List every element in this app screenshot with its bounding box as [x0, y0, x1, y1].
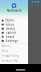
staticText: Saved [5, 35, 14, 39]
staticText: Home [5, 18, 14, 22]
staticText: About [1, 44, 10, 48]
staticText: Terms of Use [1, 59, 18, 63]
button[interactable]: Explore [0, 31, 28, 35]
staticText: Northwind [6, 9, 21, 13]
staticText: Library [5, 27, 14, 30]
button[interactable]: Saved [0, 35, 28, 39]
button[interactable]: Privacy Policy [0, 53, 28, 58]
button[interactable]: About [0, 43, 28, 48]
staticText: Help [1, 49, 8, 53]
button[interactable]: Home [0, 18, 28, 22]
button[interactable]: Help [0, 48, 28, 53]
staticText: Explore [5, 31, 16, 35]
button[interactable]: Library [0, 27, 28, 31]
button[interactable]: Terms of Use [0, 58, 28, 63]
button[interactable]: Inbox [0, 22, 28, 27]
staticText: Inbox [5, 23, 13, 26]
button[interactable]: Settings [0, 39, 28, 43]
staticText: Privacy Policy [1, 54, 18, 58]
staticText: Settings [5, 39, 17, 43]
